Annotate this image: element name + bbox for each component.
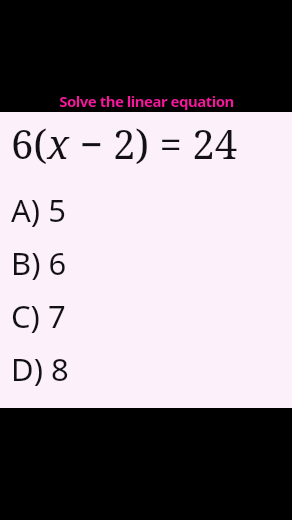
staticText: C) 7 [11,295,66,337]
staticText: 6(x − 2) = 24 [11,116,238,170]
staticText: Solve the linear equation [59,91,234,111]
button[interactable]: A) 5 [0,183,292,236]
staticText: D) 8 [11,348,69,390]
button[interactable]: B) 6 [0,236,292,289]
staticText: A) 5 [11,189,66,231]
button[interactable]: C) 7 [0,289,292,342]
staticText: B) 6 [11,242,67,284]
button[interactable]: D) 8 [0,342,292,395]
